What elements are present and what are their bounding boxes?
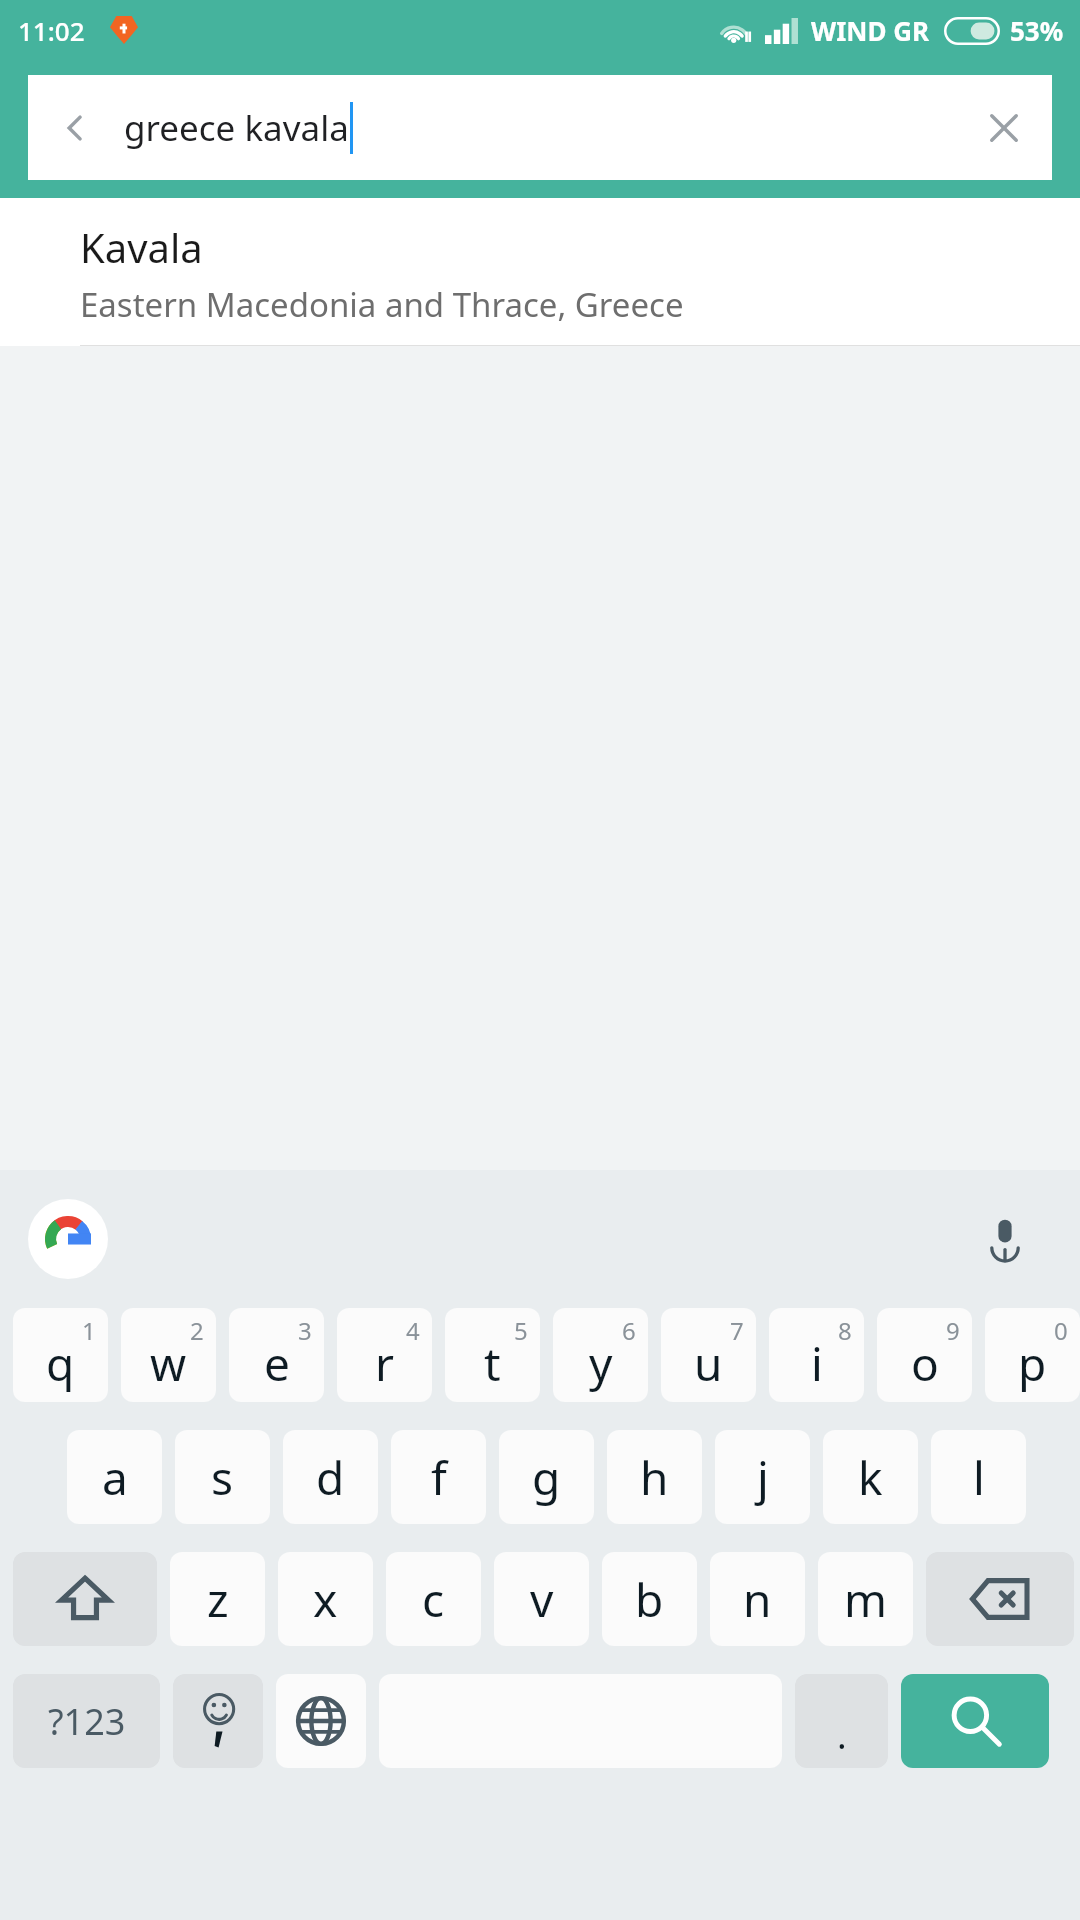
button[interactable]: c (386, 1552, 481, 1646)
staticText: ?123 (48, 1697, 126, 1746)
staticText: . (837, 1711, 847, 1760)
staticText: 3 (298, 1314, 312, 1347)
staticText: z (207, 1568, 229, 1631)
staticText: p (1018, 1332, 1047, 1395)
button[interactable]: m (818, 1552, 913, 1646)
button[interactable]: Clear query (956, 75, 1052, 180)
button[interactable]: k (823, 1430, 918, 1524)
staticText: f (431, 1446, 447, 1509)
staticText: j (757, 1446, 769, 1509)
staticText: 6 (622, 1314, 636, 1347)
staticText: 0 (1054, 1314, 1068, 1347)
button[interactable]: s (175, 1430, 270, 1524)
button[interactable]: q (13, 1308, 108, 1402)
button[interactable]: h (607, 1430, 702, 1524)
button[interactable]: a (67, 1430, 162, 1524)
button[interactable]: ?123 (13, 1674, 160, 1768)
button[interactable]: . (795, 1674, 888, 1768)
staticText: s (211, 1446, 234, 1509)
staticText: o (911, 1332, 939, 1395)
staticText: l (973, 1446, 985, 1509)
button[interactable]: n (710, 1552, 805, 1646)
button[interactable]: Google (28, 1199, 108, 1279)
staticText: Eastern Macedonia and Thrace, Greece (80, 282, 684, 327)
staticText: v (530, 1568, 554, 1631)
button[interactable]: Emoji (173, 1674, 263, 1768)
button[interactable]: t (445, 1308, 540, 1402)
staticText: 2 (190, 1314, 204, 1347)
button[interactable]: Kavala (0, 198, 1080, 346)
staticText: t (484, 1332, 501, 1395)
staticText: 5 (514, 1314, 528, 1347)
button[interactable]: Backspace (926, 1552, 1074, 1646)
button[interactable]: y (553, 1308, 648, 1402)
button[interactable]: i (769, 1308, 864, 1402)
staticText: y (589, 1332, 613, 1395)
staticText: Kavala (80, 220, 203, 274)
button[interactable]: o (877, 1308, 972, 1402)
staticText: r (375, 1332, 394, 1395)
button[interactable]: u (661, 1308, 756, 1402)
button[interactable]: z (170, 1552, 265, 1646)
button[interactable]: Change language (276, 1674, 366, 1768)
button[interactable]: l (931, 1430, 1026, 1524)
button[interactable]: Shift (13, 1552, 157, 1646)
button[interactable]: j (715, 1430, 810, 1524)
staticText: u (694, 1332, 723, 1395)
button[interactable]: g (499, 1430, 594, 1524)
staticText: d (316, 1446, 345, 1509)
button[interactable]: r (337, 1308, 432, 1402)
button[interactable]: f (391, 1430, 486, 1524)
button[interactable]: Voice input (972, 1206, 1038, 1272)
staticText: q (46, 1332, 75, 1395)
button[interactable]: e (229, 1308, 324, 1402)
staticText: 1 (82, 1314, 96, 1347)
staticText: 11:02 (18, 13, 85, 48)
staticText: k (858, 1446, 883, 1509)
staticText: c (422, 1568, 445, 1631)
button[interactable]: d (283, 1430, 378, 1524)
staticText: w (150, 1332, 187, 1395)
staticText: 53% (1010, 13, 1064, 48)
staticText: i (811, 1332, 823, 1395)
staticText: g (532, 1446, 561, 1509)
button[interactable]: Search (901, 1674, 1049, 1768)
staticText: 8 (838, 1314, 852, 1347)
staticText: m (844, 1568, 888, 1631)
staticText: x (313, 1568, 338, 1631)
staticText: a (102, 1446, 128, 1509)
staticText: h (640, 1446, 669, 1509)
staticText: 9 (946, 1314, 960, 1347)
button[interactable]: x (278, 1552, 373, 1646)
staticText: WIND GR (811, 13, 930, 48)
staticText: 4 (406, 1314, 420, 1347)
staticText: e (264, 1332, 290, 1395)
button[interactable]: Back (28, 75, 124, 180)
staticText: b (635, 1568, 664, 1631)
staticText: n (743, 1568, 772, 1631)
button[interactable]: w (121, 1308, 216, 1402)
button[interactable]: b (602, 1552, 697, 1646)
staticText: greece kavala (124, 104, 349, 152)
staticText: 7 (730, 1314, 744, 1347)
button[interactable]: v (494, 1552, 589, 1646)
button[interactable]: p (985, 1308, 1080, 1402)
